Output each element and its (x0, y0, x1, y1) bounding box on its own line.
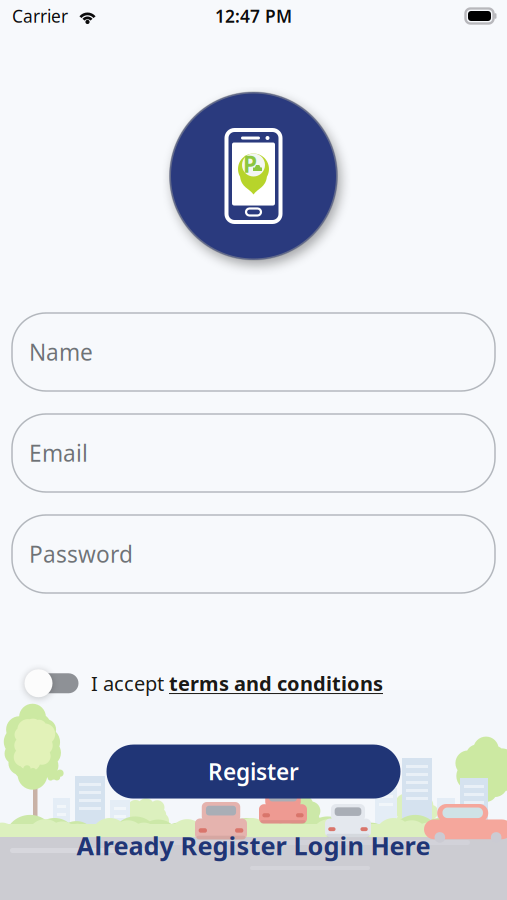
staticText: P (243, 149, 257, 179)
staticText: Name (29, 337, 93, 367)
button[interactable]: Already Register Login Here (76, 829, 430, 862)
staticText: I accept terms and conditions (91, 670, 383, 697)
button[interactable]: Password (12, 515, 495, 593)
button[interactable]: Email (12, 414, 495, 492)
button[interactable]: Accept terms and conditions (22, 666, 76, 700)
button[interactable]: I accept terms and conditions (76, 664, 383, 703)
button[interactable]: Register (106, 745, 400, 799)
staticText: Already Register Login Here (76, 829, 430, 862)
staticText: Carrier (12, 4, 68, 27)
staticText: Register (208, 756, 299, 787)
button[interactable]: Name (12, 313, 495, 391)
staticText: Password (29, 539, 133, 569)
staticText: Email (29, 438, 88, 468)
staticText: 12:47 PM (215, 4, 292, 27)
